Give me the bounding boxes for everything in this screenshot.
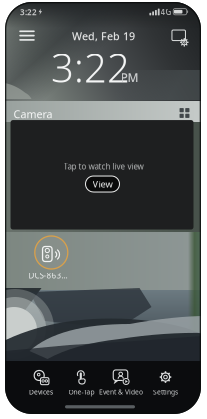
staticText: Tap to watch live view [63, 161, 143, 172]
button[interactable]: Menu [15, 26, 39, 46]
staticText: View [92, 178, 112, 190]
staticText: Wed, Feb 19 [72, 29, 135, 43]
button[interactable]: Grid view [177, 106, 191, 120]
staticText: DCS-863... [28, 270, 67, 281]
staticText: 4G [160, 7, 171, 17]
button[interactable]: DCS-863... [29, 230, 73, 284]
staticText: Event & Video [99, 388, 143, 396]
button[interactable]: Camera settings [169, 28, 193, 50]
button[interactable]: View [85, 175, 120, 193]
staticText: 3:22 [20, 7, 37, 17]
button[interactable]: Event & Video [98, 367, 144, 397]
staticText: One-Tap [68, 388, 94, 396]
staticText: 3:22 [51, 40, 130, 93]
button[interactable]: Settings [142, 367, 188, 397]
staticText: PM [120, 69, 138, 85]
staticText: Devices [29, 388, 53, 396]
button[interactable]: One-Tap [58, 367, 104, 397]
button[interactable]: Devices [18, 367, 64, 397]
staticText: Camera [13, 107, 52, 121]
staticText: Settings [153, 388, 178, 396]
